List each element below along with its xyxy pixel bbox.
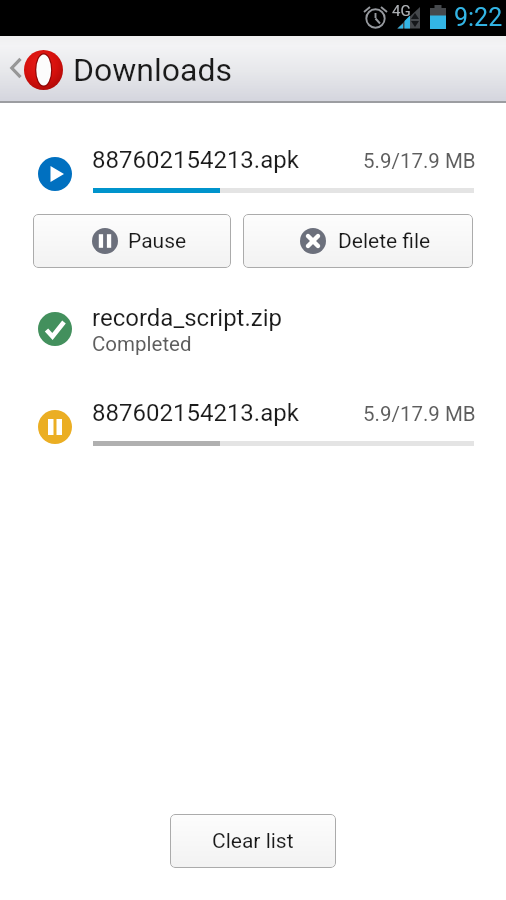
other: Completed [38, 312, 72, 346]
staticText: 887602154213.apk [92, 146, 299, 174]
staticText: Downloads [73, 51, 232, 89]
staticText: 4G [392, 2, 411, 20]
staticText: 9:22 [454, 3, 503, 32]
other: Paused [38, 410, 72, 444]
button[interactable]: Pause [33, 214, 231, 268]
staticText: Completed [92, 332, 192, 356]
staticText: 887602154213.apk [92, 399, 299, 427]
staticText: 5.9/17.9 MB [363, 402, 476, 426]
button[interactable]: Delete file [243, 214, 473, 268]
staticText: Clear list [212, 829, 294, 854]
staticText: Pause [128, 229, 187, 254]
staticText: 5.9/17.9 MB [363, 149, 476, 173]
staticText: Delete file [338, 229, 431, 254]
button[interactable]: Downloading [0, 136, 506, 204]
button[interactable]: Paused [0, 389, 506, 457]
staticText: recorda_script.zip [92, 304, 283, 332]
other: Downloading [38, 157, 72, 191]
button[interactable]: Navigate up [0, 36, 71, 102]
button[interactable]: Completed [0, 292, 506, 360]
button[interactable]: Clear list [170, 814, 336, 868]
